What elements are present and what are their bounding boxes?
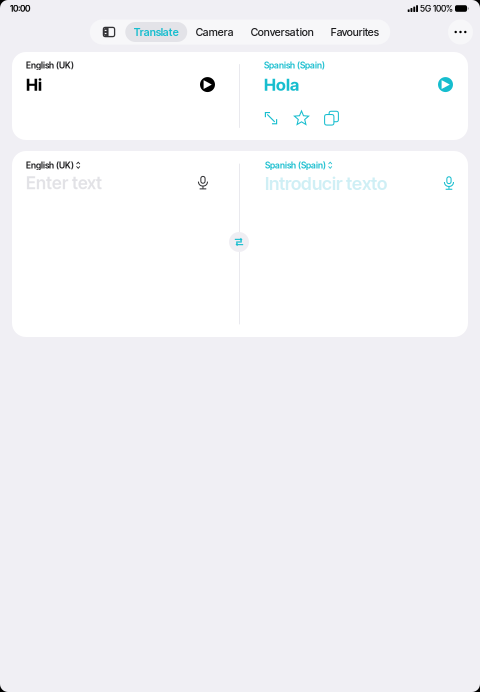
staticText: English (UK) — [26, 160, 74, 170]
button[interactable]: Add to favourites — [294, 111, 324, 126]
button[interactable]: Show sidebar — [92, 19, 125, 44]
staticText: Enter text — [26, 172, 102, 193]
staticText: Spanish (Spain) — [264, 60, 325, 70]
button[interactable]: Favourites — [322, 22, 387, 42]
staticText: Spanish (Spain) — [265, 160, 326, 170]
button[interactable]: Dictate in Spanish — [444, 176, 454, 190]
staticText: Camera — [196, 25, 234, 38]
staticText: Favourites — [331, 25, 379, 38]
button[interactable]: More options — [448, 19, 473, 44]
button[interactable]: Play English translation — [200, 77, 215, 92]
staticText: Hi — [26, 74, 42, 95]
button[interactable]: Translate — [125, 22, 187, 42]
staticText: Hola — [264, 74, 299, 95]
button[interactable]: Show full screen — [264, 111, 294, 126]
staticText: Translate — [134, 25, 179, 38]
button[interactable]: Swap languages — [229, 232, 249, 252]
button[interactable]: Spanish (Spain) — [265, 160, 332, 170]
button[interactable]: Conversation — [242, 22, 322, 42]
staticText: Conversation — [251, 25, 314, 38]
button[interactable]: Play Spanish translation — [438, 77, 453, 92]
button[interactable]: Copy translation — [324, 111, 354, 126]
staticText: 10:00 — [10, 3, 30, 14]
staticText: 5G 100% — [418, 3, 455, 14]
button[interactable]: Camera — [187, 22, 242, 42]
button[interactable]: English (UK) — [26, 160, 80, 170]
button[interactable]: Dictate in English — [198, 176, 208, 190]
staticText: English (UK) — [26, 60, 74, 70]
staticText: Introducir texto — [265, 172, 387, 194]
